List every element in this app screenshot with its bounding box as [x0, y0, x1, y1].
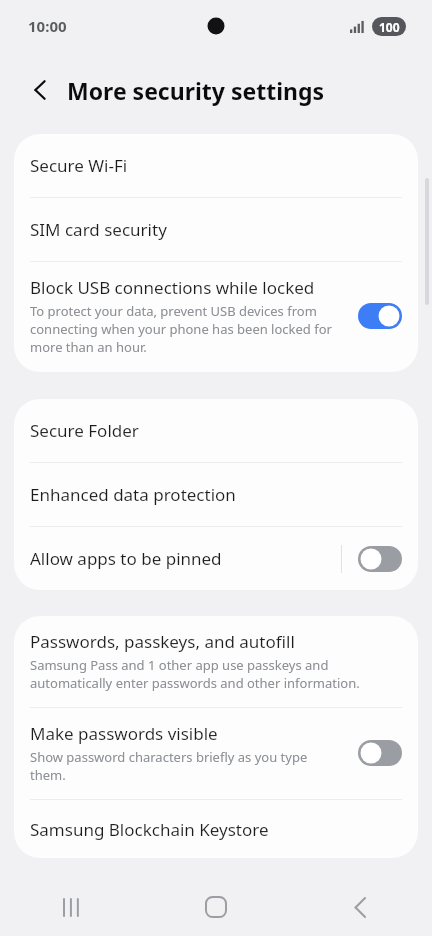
button[interactable]: Passwords, passkeys, and autofill: [14, 616, 418, 707]
staticText: Show password characters briefly as you …: [30, 748, 346, 784]
button[interactable]: Recents: [46, 881, 98, 933]
button[interactable]: Home: [190, 881, 242, 933]
staticText: Make passwords visible: [30, 722, 218, 745]
staticText: Samsung Pass and 1 other app use passkey…: [30, 656, 402, 692]
staticText: Secure Wi-Fi: [30, 154, 128, 177]
staticText: 100: [379, 19, 400, 35]
button[interactable]: Toggle off: [358, 546, 402, 572]
button[interactable]: Allow apps to be pinned: [14, 527, 418, 590]
button[interactable]: Toggle off: [358, 740, 402, 766]
staticText: Block USB connections while locked: [30, 276, 315, 299]
staticText: SIM card security: [30, 218, 167, 241]
button[interactable]: Back: [20, 69, 62, 111]
staticText: Samsung Blockchain Keystore: [30, 818, 269, 841]
staticText: Secure Folder: [30, 419, 139, 442]
button[interactable]: Block USB connections while locked: [14, 262, 418, 372]
button[interactable]: Make passwords visible: [14, 708, 418, 799]
button[interactable]: Back: [334, 881, 386, 933]
staticText: 10:00: [28, 16, 67, 36]
button[interactable]: Samsung Blockchain Keystore: [14, 800, 418, 858]
staticText: Allow apps to be pinned: [30, 547, 222, 570]
staticText: More security settings: [67, 75, 325, 106]
button[interactable]: SIM card security: [14, 198, 418, 261]
staticText: Passwords, passkeys, and autofill: [30, 630, 295, 653]
button[interactable]: Secure Folder: [14, 399, 418, 462]
button[interactable]: Enhanced data protection: [14, 463, 418, 526]
button[interactable]: Secure Wi-Fi: [14, 134, 418, 197]
staticText: To protect your data, prevent USB device…: [30, 302, 346, 356]
staticText: Enhanced data protection: [30, 483, 236, 506]
button[interactable]: Toggle on: [358, 303, 402, 329]
